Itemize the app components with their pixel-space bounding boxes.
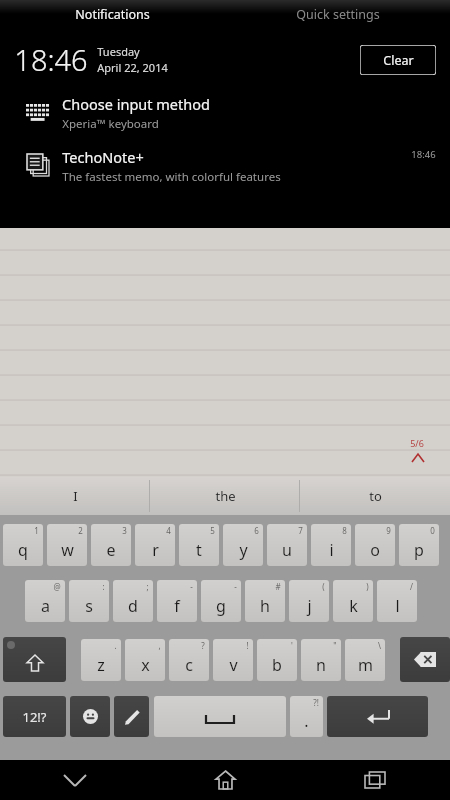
staticText: 7 <box>298 525 303 536</box>
button[interactable]: TechoNote+ <box>0 145 450 195</box>
staticText: The fastest memo, with colorful features <box>62 169 281 185</box>
staticText: Xperia™ keyboard <box>62 116 159 132</box>
button[interactable]: Handwriting <box>114 696 149 737</box>
staticText: g <box>216 595 226 617</box>
staticText: b <box>272 654 282 676</box>
staticText: Quick settings <box>296 6 380 23</box>
staticText: n <box>316 654 326 676</box>
staticText: 5 <box>210 525 215 536</box>
button[interactable]: Home <box>150 760 300 800</box>
staticText: Choose input method <box>62 94 210 114</box>
staticText: : <box>102 581 105 592</box>
staticText: . <box>304 710 309 732</box>
button[interactable]: 9 <box>355 524 395 566</box>
button[interactable]: - <box>157 580 197 622</box>
button[interactable]: 0 <box>399 524 439 566</box>
staticText: q <box>18 539 28 561</box>
staticText: 9 <box>386 525 391 536</box>
staticText: l <box>395 595 400 617</box>
staticText: o <box>370 539 380 561</box>
staticText: x <box>141 654 150 676</box>
button[interactable]: ? <box>169 639 209 681</box>
staticText: v <box>229 654 238 676</box>
staticText: 3 <box>122 525 127 536</box>
button[interactable]: " <box>301 639 341 681</box>
staticText: d <box>128 595 138 617</box>
staticText: 18:46 <box>14 40 88 79</box>
button[interactable]: ' <box>257 639 297 681</box>
button[interactable]: 6 <box>223 524 263 566</box>
button[interactable]: 1 <box>3 524 43 566</box>
button[interactable]: 8 <box>311 524 351 566</box>
staticText: @ <box>53 581 61 592</box>
staticText: ! <box>246 640 249 651</box>
staticText: i <box>329 539 334 561</box>
staticText: f <box>174 595 180 617</box>
staticText: ?! <box>313 697 319 708</box>
staticText: k <box>349 595 358 617</box>
staticText: t <box>196 539 202 561</box>
button[interactable]: ! <box>213 639 253 681</box>
button[interactable]: \ <box>345 639 385 681</box>
staticText: y <box>239 539 248 561</box>
staticText: the <box>215 487 236 505</box>
button[interactable]: I <box>0 477 150 515</box>
button[interactable]: 3 <box>91 524 131 566</box>
button[interactable]: Emoji <box>70 696 110 737</box>
button[interactable]: 4 <box>135 524 175 566</box>
staticText: Notifications <box>75 6 150 23</box>
button[interactable]: . <box>81 639 121 681</box>
button[interactable]: / <box>377 580 417 622</box>
button[interactable]: @ <box>25 580 65 622</box>
button[interactable]: Delete <box>400 637 450 682</box>
staticText: # <box>275 581 281 592</box>
button[interactable]: Quick settings <box>225 0 450 28</box>
button[interactable]: ) <box>333 580 373 622</box>
button[interactable]: Enter <box>327 696 428 737</box>
button[interactable]: Choose input method <box>0 92 450 142</box>
staticText: ( <box>322 581 325 592</box>
button[interactable]: Notifications <box>0 0 225 28</box>
staticText: - <box>190 581 193 592</box>
button[interactable]: Symbols <box>3 696 66 737</box>
staticText: r <box>152 539 159 561</box>
staticText: 6 <box>254 525 259 536</box>
staticText: u <box>282 539 292 561</box>
button[interactable]: , <box>125 639 165 681</box>
button[interactable]: Shift <box>3 637 66 682</box>
staticText: 18:46 <box>411 148 436 161</box>
button[interactable]: to <box>300 477 450 515</box>
staticText: m <box>358 654 373 676</box>
button[interactable]: ; <box>113 580 153 622</box>
button[interactable]: 7 <box>267 524 307 566</box>
button[interactable]: 2 <box>47 524 87 566</box>
button[interactable]: - <box>201 580 241 622</box>
staticText: , <box>158 640 161 651</box>
button[interactable]: : <box>69 580 109 622</box>
staticText: 8 <box>342 525 347 536</box>
button[interactable]: Space <box>154 696 286 737</box>
staticText: 5/6 <box>410 437 424 449</box>
staticText: Tuesday <box>97 44 140 59</box>
staticText: to <box>369 487 382 505</box>
button[interactable]: 5 <box>179 524 219 566</box>
staticText: w <box>61 539 74 561</box>
staticText: z <box>97 654 105 676</box>
button[interactable]: ?! <box>290 696 323 737</box>
staticText: ) <box>366 581 369 592</box>
staticText: 2 <box>78 525 83 536</box>
button[interactable]: ( <box>289 580 329 622</box>
button[interactable]: Clear <box>360 45 436 75</box>
staticText: p <box>414 539 424 561</box>
staticText: s <box>85 595 93 617</box>
staticText: a <box>41 595 50 617</box>
staticText: \ <box>378 640 381 651</box>
button[interactable]: the <box>150 477 300 515</box>
button[interactable]: Back <box>0 760 150 800</box>
staticText: e <box>106 539 116 561</box>
button[interactable]: Recent apps <box>300 760 450 800</box>
staticText: 0 <box>430 525 435 536</box>
button[interactable]: # <box>245 580 285 622</box>
staticText: . <box>114 640 117 651</box>
staticText: Clear <box>383 52 414 69</box>
